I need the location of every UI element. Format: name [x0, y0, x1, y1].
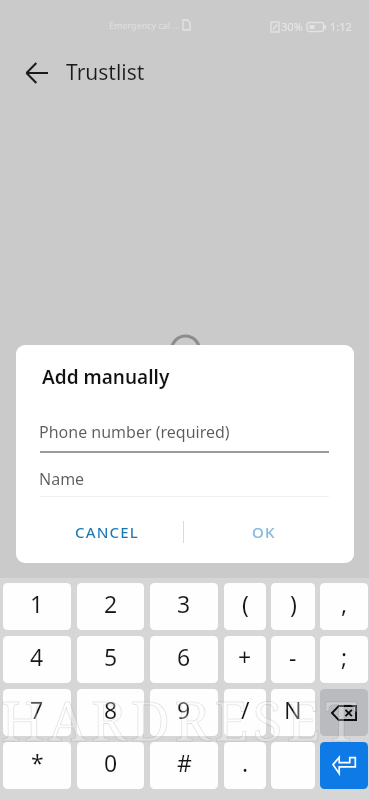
- staticText: HARDRESET: [1, 683, 363, 757]
- staticText: 1: [30, 588, 44, 619]
- staticText: N: [284, 694, 302, 725]
- staticText: 2: [104, 588, 118, 619]
- button[interactable]: ,: [320, 583, 368, 630]
- staticText: 30%: [281, 19, 303, 34]
- button[interactable]: 7: [3, 689, 71, 736]
- staticText: ): [290, 588, 297, 619]
- button[interactable]: /: [224, 689, 266, 736]
- button[interactable]: 6: [150, 636, 218, 683]
- staticText: (: [242, 588, 249, 619]
- staticText: ,: [341, 588, 348, 619]
- staticText: *: [31, 747, 44, 778]
- button[interactable]: +: [224, 636, 266, 683]
- staticText: 3: [177, 588, 191, 619]
- staticText: HARDRESET: [1, 683, 363, 757]
- staticText: Trustlist: [66, 58, 145, 87]
- staticText: 7: [30, 694, 44, 725]
- button[interactable]: 1: [3, 583, 71, 630]
- staticText: 6: [177, 641, 191, 672]
- button[interactable]: (: [224, 583, 266, 630]
- staticText: 1:12: [330, 19, 352, 34]
- button[interactable]: N: [271, 689, 315, 736]
- button[interactable]: .: [224, 742, 266, 789]
- button[interactable]: 9: [150, 689, 218, 736]
- staticText: ;: [341, 641, 348, 672]
- button[interactable]: Backspace: [320, 689, 368, 736]
- button[interactable]: Enter: [320, 742, 368, 789]
- staticText: 4: [30, 641, 44, 672]
- staticText: /: [241, 694, 250, 725]
- staticText: 5: [104, 641, 118, 672]
- button[interactable]: ): [271, 583, 315, 630]
- button[interactable]: -: [271, 636, 315, 683]
- button[interactable]: #: [150, 742, 218, 789]
- button[interactable]: 0: [77, 742, 144, 789]
- button[interactable]: CANCEL: [36, 513, 179, 551]
- button[interactable]: ;: [320, 636, 368, 683]
- staticText: 0: [104, 747, 118, 778]
- button[interactable]: *: [3, 742, 71, 789]
- staticText: +: [238, 641, 252, 672]
- button[interactable]: [271, 742, 315, 789]
- staticText: Phone number (required): [39, 421, 230, 443]
- staticText: 8: [104, 694, 118, 725]
- button[interactable]: 2: [77, 583, 144, 630]
- staticText: -: [289, 641, 297, 672]
- staticText: Name: [39, 468, 85, 490]
- staticText: Emergency cal ...: [109, 19, 180, 31]
- button[interactable]: 5: [77, 636, 144, 683]
- button[interactable]: 4: [3, 636, 71, 683]
- button[interactable]: OK: [195, 513, 332, 551]
- staticText: CANCEL: [75, 522, 140, 542]
- staticText: .: [242, 747, 249, 778]
- button[interactable]: Back: [15, 51, 59, 95]
- button[interactable]: 3: [150, 583, 218, 630]
- staticText: Add manually: [42, 364, 170, 390]
- staticText: OK: [252, 522, 276, 542]
- staticText: #: [177, 747, 192, 778]
- staticText: 9: [177, 694, 191, 725]
- button[interactable]: 8: [77, 689, 144, 736]
